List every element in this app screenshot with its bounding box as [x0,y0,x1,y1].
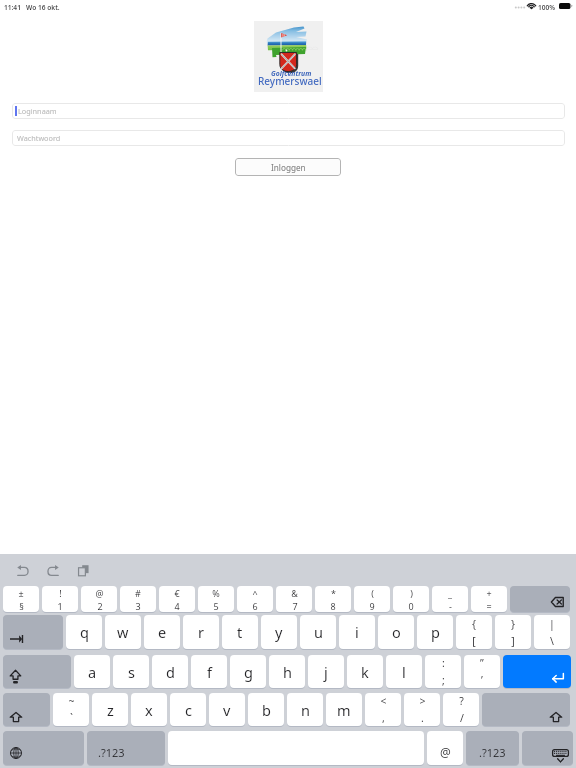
staticText: t [237,622,243,642]
staticText: \ [550,634,554,648]
staticText: v [223,700,231,720]
button[interactable] [482,693,570,726]
button[interactable]: w [105,615,141,649]
button[interactable]: b [248,693,284,726]
button[interactable]: ^ [237,586,273,612]
button[interactable]: & [276,586,312,612]
staticText: ; [442,673,445,687]
staticText: m [337,700,351,720]
button[interactable]: j [308,655,344,688]
button[interactable]: @ [81,586,117,612]
button[interactable]: q [66,615,102,649]
button[interactable]: @ [427,731,463,765]
staticText: Loginnaam [18,106,57,116]
button[interactable] [3,693,50,726]
button[interactable] [3,615,63,649]
button[interactable]: t [222,615,258,649]
button[interactable]: d [152,655,188,688]
button[interactable]: c [170,693,206,726]
staticText: [ [472,634,476,648]
staticText: x [145,700,153,720]
staticText: 7 [292,600,298,612]
staticText: r [198,622,204,642]
button[interactable]: p [417,615,453,649]
staticText: 11:41 [4,3,21,12]
button[interactable] [522,731,573,765]
button[interactable]: a [74,655,110,688]
staticText: Golfcentrum [271,69,312,78]
staticText: + [486,587,492,599]
button[interactable]: h [269,655,305,688]
button[interactable]: s [113,655,149,688]
button[interactable]: Redo [39,556,67,584]
button[interactable]: > [404,693,440,726]
staticText: e [158,622,167,642]
staticText: < [380,694,387,708]
button[interactable]: e [144,615,180,649]
button[interactable]: y [261,615,297,649]
staticText: . [421,711,424,725]
button[interactable]: .?123 [87,731,165,765]
button[interactable]: € [159,586,195,612]
button[interactable]: % [198,586,234,612]
button[interactable]: ( [354,586,390,612]
button[interactable]: f [191,655,227,688]
button[interactable]: # [120,586,156,612]
staticText: g [244,662,253,682]
button[interactable]: ? [443,693,479,726]
staticText: ” [480,656,484,670]
button[interactable]: l [386,655,422,688]
button[interactable]: ± [3,586,39,612]
button[interactable]: Paste [69,556,97,584]
button[interactable] [3,731,84,765]
staticText: y [275,622,283,642]
button[interactable]: Undo [9,556,37,584]
button[interactable]: { [456,615,492,649]
button[interactable] [503,655,571,688]
button[interactable]: Loginnaam [12,103,565,119]
staticText: ? [459,694,464,708]
button[interactable]: z [92,693,128,726]
staticText: Inloggen [271,162,306,173]
button[interactable]: } [495,615,531,649]
staticText: l [402,662,406,682]
button[interactable]: + [471,586,507,612]
button[interactable]: .?123 [466,731,519,765]
staticText: 2 [97,600,103,612]
button[interactable]: ~ [53,693,89,726]
button[interactable]: m [326,693,362,726]
staticText: c [185,700,192,720]
button[interactable]: | [534,615,570,649]
button[interactable]: ” [464,655,500,688]
button[interactable]: ! [42,586,78,612]
button[interactable]: r [183,615,219,649]
button[interactable]: n [287,693,323,726]
button[interactable] [3,655,71,688]
button[interactable]: v [209,693,245,726]
button[interactable]: k [347,655,383,688]
staticText: = [486,600,492,612]
button[interactable]: u [300,615,336,649]
button[interactable]: ) [393,586,429,612]
button[interactable]: x [131,693,167,726]
button[interactable]: < [365,693,401,726]
button[interactable]: _ [432,586,468,612]
staticText: p [431,622,440,642]
button[interactable]: i [339,615,375,649]
button[interactable]: Wachtwoord [12,130,565,146]
button[interactable]: o [378,615,414,649]
button[interactable]: Inloggen [235,158,341,176]
staticText: _ [448,587,452,599]
staticText: - [449,600,452,612]
staticText: @ [440,744,451,760]
button[interactable]: g [230,655,266,688]
staticText: # [135,587,141,599]
staticText: u [314,622,323,642]
button[interactable]: * [315,586,351,612]
staticText: k [361,662,369,682]
button[interactable] [510,586,570,612]
button[interactable]: : [425,655,461,688]
staticText: * [331,587,336,599]
staticText: Wachtwoord [17,133,61,143]
